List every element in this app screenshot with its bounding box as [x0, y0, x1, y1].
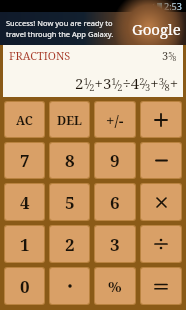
staticText: 7	[20, 149, 30, 172]
staticText: +/-	[106, 110, 124, 130]
button[interactable]: Multiply	[141, 184, 181, 220]
staticText: 0	[20, 275, 30, 298]
button[interactable]: 0	[5, 268, 44, 304]
staticText: 3	[110, 233, 120, 256]
button[interactable]: 9	[95, 143, 135, 178]
button[interactable]: Percent	[95, 268, 135, 304]
button[interactable]: All clear	[5, 102, 44, 137]
staticText: 35⁄8	[162, 48, 177, 63]
button[interactable]: 2	[50, 226, 89, 262]
button[interactable]: 8	[50, 143, 89, 178]
button[interactable]: 6	[95, 184, 135, 220]
staticText: travel through the App Galaxy.	[6, 29, 114, 39]
button[interactable]: 5	[50, 184, 89, 220]
button[interactable]: 3	[95, 226, 135, 262]
button[interactable]: Equals	[141, 268, 181, 304]
staticText: 5	[65, 191, 75, 214]
staticText: Google	[132, 19, 181, 39]
button[interactable]: Decimal point	[50, 268, 89, 304]
staticText: 21⁄2+31⁄2÷42⁄3+3⁄8+	[75, 73, 179, 94]
staticText: 2	[65, 233, 75, 256]
button[interactable]: Plus minus	[95, 102, 135, 137]
staticText: Success! Now you are ready to	[6, 18, 113, 28]
staticText: %	[108, 276, 122, 296]
button[interactable]: Minus	[141, 143, 181, 178]
button[interactable]: 1	[5, 226, 44, 262]
staticText: 6	[110, 191, 120, 214]
staticText: AC	[16, 112, 33, 128]
staticText: 8	[65, 149, 75, 172]
button[interactable]: Divide	[141, 226, 181, 262]
button[interactable]: 4	[5, 184, 44, 220]
staticText: 4	[20, 191, 30, 214]
staticText: 9	[110, 149, 120, 172]
staticText: FRACTIONS	[9, 48, 71, 63]
button[interactable]: 7	[5, 143, 44, 178]
staticText: 1	[20, 233, 30, 256]
staticText: DEL	[57, 112, 82, 128]
staticText: 2:53	[164, 0, 182, 12]
button[interactable]: Delete	[50, 102, 89, 137]
button[interactable]: Plus	[141, 102, 181, 137]
